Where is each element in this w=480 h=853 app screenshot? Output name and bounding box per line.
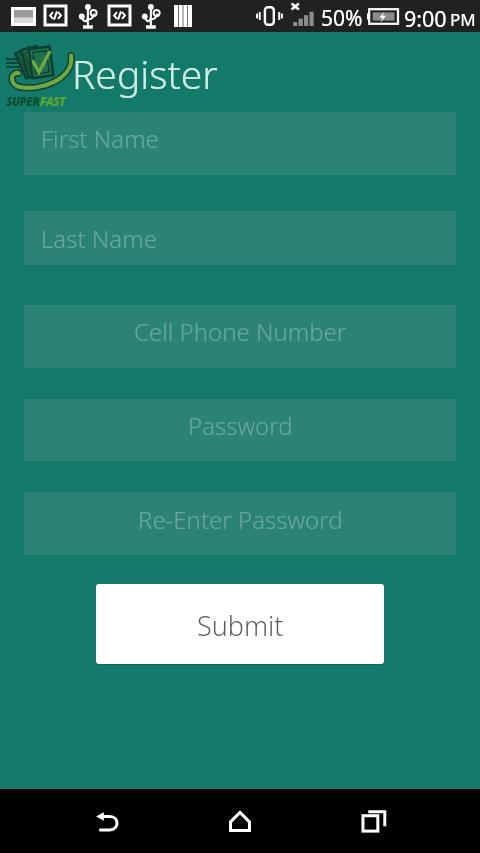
staticText: FAST <box>40 94 66 110</box>
staticText: 50% <box>321 4 363 33</box>
button[interactable]: Home <box>210 791 270 851</box>
button[interactable]: Submit <box>96 584 384 664</box>
staticText: Re-Enter Password <box>138 503 343 536</box>
staticText: 9:00 <box>404 4 447 33</box>
staticText: Last Name <box>41 222 157 255</box>
button[interactable]: Re-Enter Password <box>24 492 456 555</box>
staticText: First Name <box>41 122 159 155</box>
button[interactable]: Last Name <box>24 211 456 265</box>
staticText: Submit <box>197 607 284 644</box>
button[interactable]: Cell Phone Number <box>24 305 456 368</box>
button[interactable]: First Name <box>24 112 456 175</box>
staticText: SUPER <box>6 94 40 110</box>
staticText: PM <box>450 8 476 31</box>
staticText: Password <box>188 409 293 442</box>
button[interactable]: Back <box>77 791 137 851</box>
button[interactable]: Recents <box>344 791 404 851</box>
staticText: Cell Phone Number <box>134 315 347 348</box>
staticText: Register <box>72 47 218 100</box>
button[interactable]: Password <box>24 399 456 461</box>
